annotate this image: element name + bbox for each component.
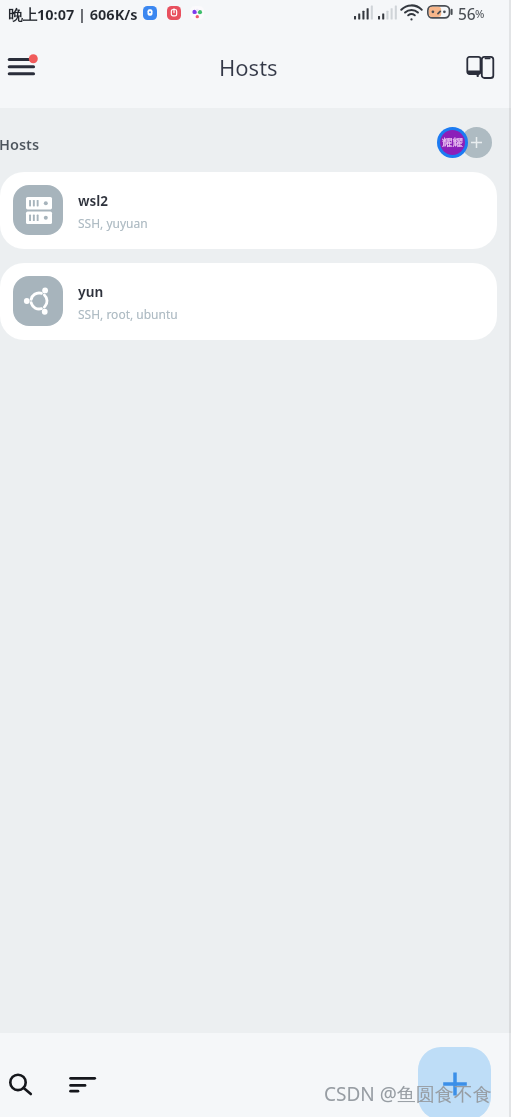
staticText: Hosts: [0, 134, 40, 154]
staticText: 耀耀: [442, 136, 463, 149]
button[interactable]: Sort: [60, 1060, 104, 1104]
staticText: SSH, root, ubuntu: [78, 306, 178, 322]
button[interactable]: yun: [0, 263, 497, 340]
button[interactable]: Search: [0, 1060, 40, 1100]
staticText: CSDN @鱼圆食不食: [324, 1081, 492, 1107]
staticText: SSH, yuyuan: [78, 215, 148, 231]
button[interactable]: Add account: [461, 127, 492, 158]
staticText: yun: [78, 283, 104, 301]
staticText: 晚上10:07 | 606K/s: [8, 4, 138, 24]
staticText: 56: [458, 3, 476, 24]
staticText: wsl2: [78, 192, 109, 210]
button[interactable]: Devices: [462, 48, 498, 84]
staticText: Hosts: [219, 52, 278, 82]
button[interactable]: Add host: [418, 1047, 491, 1117]
staticText: %: [475, 6, 485, 21]
button[interactable]: Account: [437, 127, 468, 158]
button[interactable]: wsl2: [0, 172, 497, 249]
button[interactable]: Menu: [2, 44, 46, 88]
